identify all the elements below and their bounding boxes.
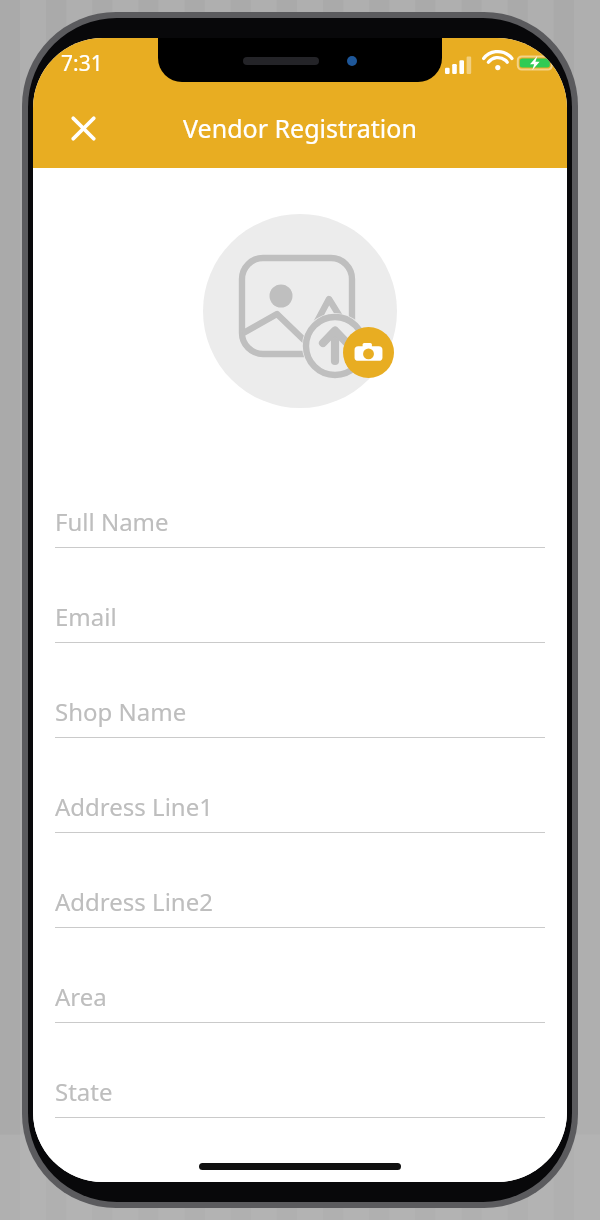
staticText: State — [55, 1075, 113, 1108]
staticText: 7:31 — [61, 49, 103, 78]
staticText: Email — [55, 600, 117, 633]
staticText: Shop Name — [55, 695, 187, 728]
button[interactable]: Email — [33, 548, 567, 643]
staticText: Area — [55, 980, 107, 1013]
staticText: Address Line2 — [55, 885, 213, 918]
button[interactable]: Close — [59, 104, 107, 152]
button[interactable]: Full Name — [33, 453, 567, 548]
staticText: Vendor Registration — [183, 111, 417, 145]
button[interactable]: Address Line2 — [33, 833, 567, 928]
button[interactable]: Upload shop photo — [203, 214, 397, 408]
button[interactable]: State — [33, 1023, 567, 1118]
button[interactable]: Area — [33, 928, 567, 1023]
staticText: Full Name — [55, 505, 169, 538]
staticText: Address Line1 — [55, 790, 213, 823]
button[interactable]: Shop Name — [33, 643, 567, 738]
button[interactable]: Take photo — [343, 327, 394, 378]
button[interactable]: Address Line1 — [33, 738, 567, 833]
